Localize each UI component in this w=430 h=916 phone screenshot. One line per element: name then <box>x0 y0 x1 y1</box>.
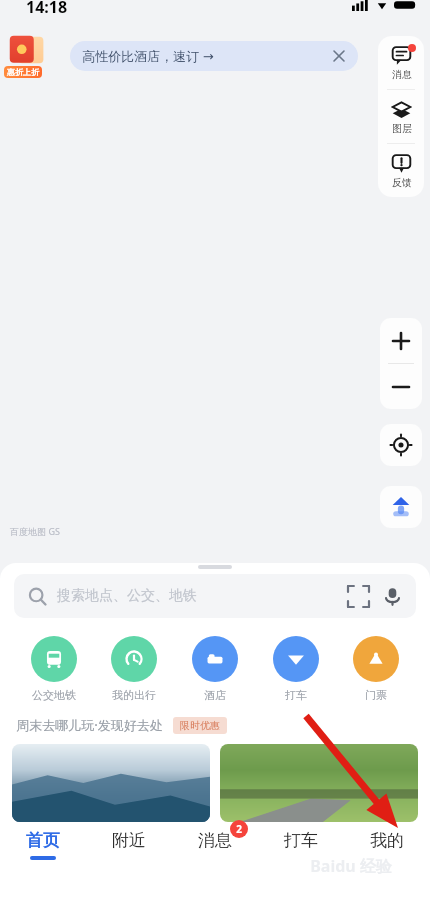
other: 扫一扫 <box>348 586 369 607</box>
staticText: 打车 <box>284 830 318 851</box>
button[interactable]: 打车 <box>258 830 344 890</box>
staticText: 2 <box>236 822 242 836</box>
staticText: 公交地铁 <box>32 688 76 702</box>
other: 语音 <box>383 587 402 606</box>
staticText: 我的 <box>370 830 404 851</box>
staticText: 限时优惠 <box>180 719 220 732</box>
button[interactable]: 图层 <box>378 90 424 143</box>
button[interactable]: 我的 <box>344 830 430 890</box>
staticText: 消息 <box>392 68 412 81</box>
staticText: 图层 <box>392 122 412 135</box>
staticText: 首页 <box>26 830 60 851</box>
button[interactable]: 门票 <box>339 636 413 702</box>
other: 关闭 <box>332 49 346 63</box>
staticText: 打车 <box>285 688 307 702</box>
button[interactable]: 缩小 <box>380 364 422 409</box>
button[interactable]: 放大 <box>380 318 422 363</box>
staticText: 周末去哪儿玩·发现好去处 <box>16 716 163 734</box>
staticText: 反馈 <box>392 176 412 189</box>
button[interactable]: 公交地铁 <box>17 636 91 702</box>
button[interactable]: 酒店 <box>178 636 252 702</box>
button[interactable]: 定位 <box>380 424 422 466</box>
button[interactable]: 高性价比酒店，速订 → <box>70 41 358 71</box>
button[interactable] <box>12 744 210 822</box>
staticText: Baidu 经验 <box>310 855 392 877</box>
button[interactable]: 消息 <box>378 36 424 89</box>
staticText: 消息 <box>198 830 232 851</box>
button[interactable] <box>220 744 418 822</box>
button[interactable]: 搜索地点、公交、地铁 <box>14 574 416 618</box>
staticText: 惠折上折 <box>7 67 39 77</box>
button[interactable]: 反馈 <box>378 144 424 197</box>
button[interactable]: 打车 <box>259 636 333 702</box>
button[interactable]: 我的出行 <box>97 636 171 702</box>
staticText: 高性价比酒店，速订 → <box>82 47 214 65</box>
staticText: 酒店 <box>204 688 226 702</box>
button[interactable]: 导航 <box>380 486 422 528</box>
staticText: 百度地图 GS <box>10 525 60 537</box>
button[interactable]: 优惠红包 <box>4 32 52 80</box>
staticText: 门票 <box>365 688 387 702</box>
staticText: 附近 <box>112 830 146 851</box>
button[interactable]: 消息 <box>172 830 258 890</box>
staticText: 搜索地点、公交、地铁 <box>57 587 197 605</box>
button[interactable]: 附近 <box>86 830 172 890</box>
staticText: 14:18 <box>26 0 68 14</box>
staticText: 我的出行 <box>112 688 156 702</box>
button[interactable]: 首页 <box>0 830 86 890</box>
